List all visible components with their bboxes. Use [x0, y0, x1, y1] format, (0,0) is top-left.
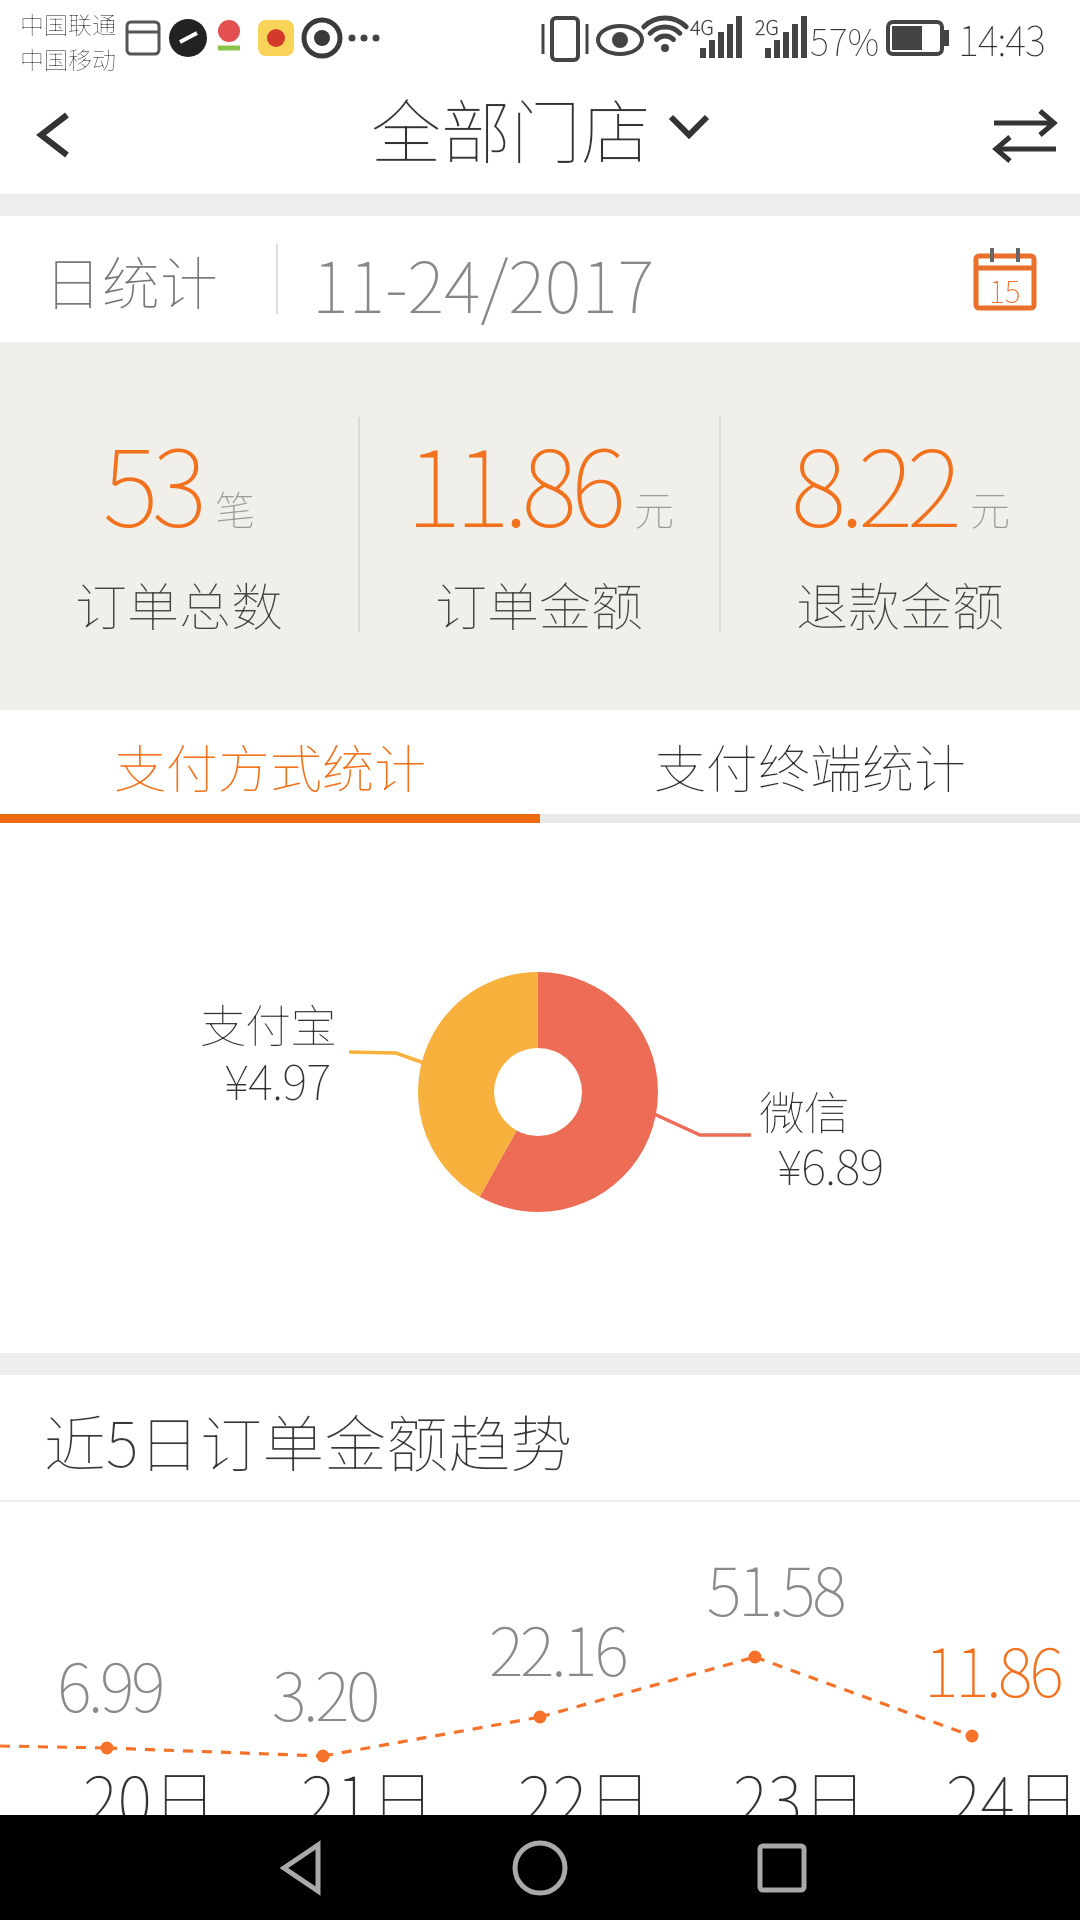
staticText: 6.99 — [57, 1635, 163, 1731]
staticText: 21日 — [301, 1748, 436, 1844]
button[interactable] — [0, 75, 110, 194]
staticText: 11.86 — [406, 404, 620, 557]
staticText: 订单总数 — [75, 566, 284, 641]
staticText: ¥4.97 — [224, 1044, 331, 1114]
staticText: 14:43 — [958, 10, 1045, 68]
staticText: 57% — [810, 14, 880, 66]
staticText: 2G — [755, 12, 779, 41]
staticText: 全部门店 — [371, 77, 651, 178]
button[interactable] — [727, 1815, 837, 1920]
staticText: 中国移动 — [20, 41, 116, 75]
staticText: 支付宝 — [200, 990, 336, 1057]
staticText: 11.86 — [924, 1620, 1061, 1716]
staticText: ¥6.89 — [777, 1129, 884, 1199]
staticText: 20日 — [83, 1748, 218, 1844]
staticText: 近5日订单金额趋势 — [44, 1395, 573, 1485]
staticText: 支付终端统计 — [654, 728, 967, 803]
button[interactable] — [970, 75, 1080, 194]
staticText: 日统计 — [44, 238, 219, 322]
staticText: 11-24/2017 — [312, 232, 655, 333]
staticText: 退款金额 — [796, 566, 1005, 641]
staticText: 4G — [690, 12, 714, 41]
button[interactable]: 支付终端统计 — [540, 710, 1080, 814]
staticText: 微信 — [759, 1077, 850, 1144]
staticText: 24日 — [946, 1748, 1080, 1844]
button[interactable]: 支付方式统计 — [0, 710, 540, 814]
staticText: 53 — [103, 404, 201, 557]
staticText: 8.22 — [791, 404, 956, 557]
staticText: 22.16 — [489, 1599, 626, 1695]
button[interactable]: 全部门店 — [371, 77, 709, 178]
staticText: 支付方式统计 — [114, 728, 427, 803]
staticText: 22日 — [518, 1748, 653, 1844]
staticText: 订单金额 — [435, 566, 644, 641]
staticText: 51.58 — [707, 1539, 844, 1635]
button[interactable] — [245, 1815, 355, 1920]
staticText: 元 — [634, 479, 674, 537]
staticText: 3.20 — [272, 1644, 378, 1740]
staticText: 笔 — [215, 479, 255, 537]
button[interactable]: 11-24/2017 — [312, 232, 655, 333]
button[interactable] — [485, 1815, 595, 1920]
staticText: 15 — [989, 268, 1021, 311]
staticText: 中国联通 — [20, 6, 116, 41]
button[interactable]: 15 — [960, 234, 1050, 324]
staticText: 元 — [970, 479, 1010, 537]
staticText: 23日 — [733, 1748, 868, 1844]
